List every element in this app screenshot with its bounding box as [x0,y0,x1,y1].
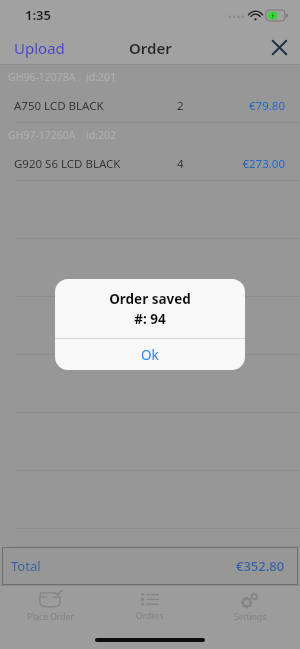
staticText: €273.00 [242,156,285,172]
staticText: GH96-12078A [8,70,76,84]
staticText: #: 94 [134,310,166,328]
button[interactable]: Place Order [0,588,100,626]
staticText: GH97-17260A [8,128,76,142]
button[interactable]: Orders [100,589,200,625]
button[interactable]: Close [259,34,300,61]
staticText: id:201 [86,70,116,84]
staticText: A750 LCD BLACK [14,98,177,114]
staticText: G920 S6 LCD BLACK [14,156,177,172]
staticText: Total [11,557,41,575]
staticText: Ok [141,346,159,364]
staticText: Settings [234,611,267,623]
button[interactable]: Ok [55,339,245,370]
staticText: €352.80 [236,557,285,575]
staticText: €79.80 [249,98,285,114]
staticText: 2 [177,98,184,114]
staticText: 4 [177,156,184,172]
staticText: Upload [14,38,65,58]
button[interactable]: G920 S6 LCD BLACK [0,147,300,181]
staticText: id:202 [86,128,116,142]
button[interactable]: Total [2,547,298,585]
staticText: Orders [136,610,164,622]
button[interactable]: A750 LCD BLACK [0,89,300,123]
staticText: Order [129,38,172,58]
staticText: 1:35 [25,6,51,24]
staticText: Order saved [109,290,191,308]
button[interactable]: Upload [0,32,79,64]
staticText: Place Order [27,611,74,623]
button[interactable]: Settings [200,588,300,626]
